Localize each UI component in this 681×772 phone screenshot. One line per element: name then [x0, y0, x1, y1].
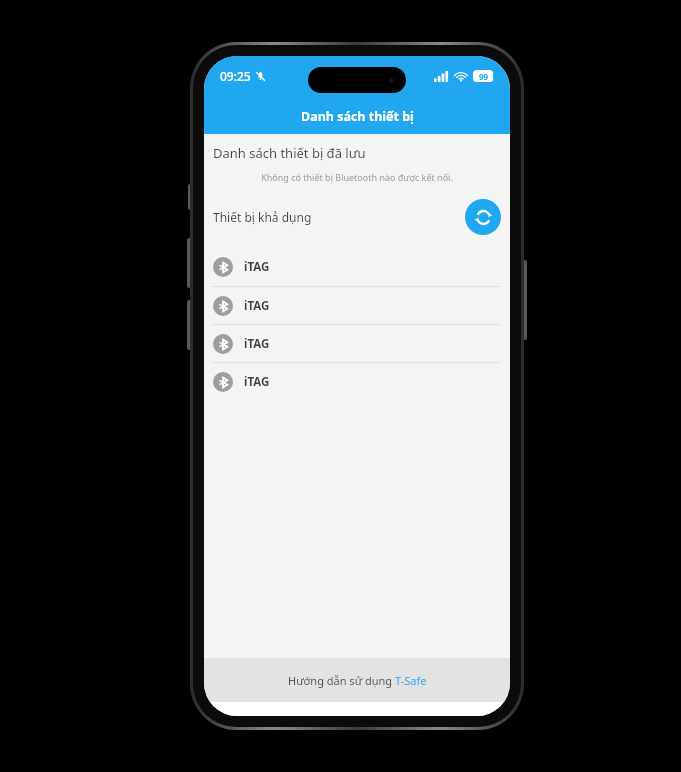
button[interactable]: iTAG	[204, 287, 510, 324]
button[interactable]: iTAG	[204, 363, 510, 400]
staticText: Danh sách thiết bị đã lưu	[213, 144, 366, 162]
staticText: 09:25	[220, 68, 251, 84]
staticText: iTAG	[244, 259, 270, 275]
staticText: iTAG	[244, 374, 270, 390]
staticText: Không có thiết bị Bluetooth nào được kết…	[204, 171, 510, 183]
button[interactable]: iTAG	[204, 248, 510, 286]
button[interactable]: Hướng dẫn sử dụng	[204, 658, 510, 702]
staticText: Hướng dẫn sử dụng	[288, 673, 395, 688]
staticText: Danh sách thiết bị	[301, 108, 414, 125]
staticText: 99	[479, 71, 489, 82]
button[interactable]: Refresh device list	[465, 199, 501, 235]
staticText: iTAG	[244, 298, 270, 314]
staticText: iTAG	[244, 336, 270, 352]
button[interactable]: iTAG	[204, 325, 510, 362]
staticText: Thiết bị khả dụng	[213, 209, 312, 225]
staticText: T-Safe	[395, 673, 427, 688]
